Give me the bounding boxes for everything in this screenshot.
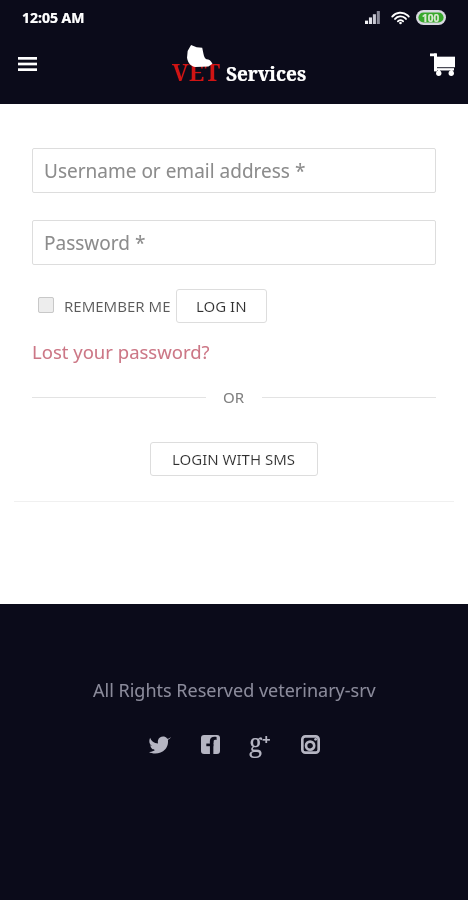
- staticText: Username or email address *: [44, 158, 306, 184]
- staticText: All Rights Reserved veterinary-srv: [93, 678, 376, 703]
- button[interactable]: Shopping cart: [422, 44, 462, 84]
- button[interactable]: LOGIN WITH SMS: [150, 442, 318, 476]
- button[interactable]: Twitter: [142, 726, 178, 762]
- button[interactable]: REMEMBER ME: [38, 296, 171, 316]
- button[interactable]: Google Plus: [242, 726, 278, 762]
- staticText: 100: [422, 11, 440, 25]
- staticText: +: [262, 729, 271, 749]
- staticText: g: [249, 725, 263, 759]
- button[interactable]: Password *: [32, 220, 436, 265]
- button[interactable]: LOG IN: [176, 289, 267, 323]
- button[interactable]: Facebook: [192, 726, 228, 762]
- button[interactable]: Instagram: [292, 726, 328, 762]
- button[interactable]: Lost your password?: [32, 339, 210, 364]
- button[interactable]: Open navigation menu: [7, 44, 47, 84]
- button[interactable]: Username or email address *: [32, 148, 436, 193]
- staticText: OR: [223, 387, 245, 407]
- staticText: LOG IN: [196, 296, 247, 316]
- staticText: REMEMBER ME: [64, 296, 171, 316]
- staticText: Password *: [44, 230, 146, 256]
- staticText: LOGIN WITH SMS: [172, 449, 296, 469]
- staticText: VET: [172, 55, 221, 88]
- staticText: 12:05 AM: [22, 8, 85, 27]
- staticText: Services: [226, 61, 307, 87]
